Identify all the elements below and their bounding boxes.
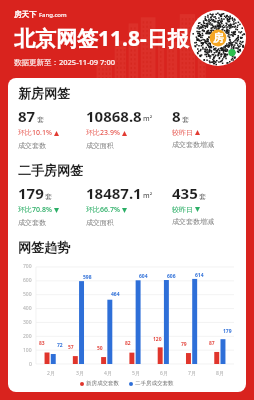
staticText: 房天下: [14, 10, 37, 19]
staticText: 8: [172, 106, 181, 126]
staticText: 606: [167, 273, 176, 280]
staticText: 50: [97, 345, 103, 352]
button[interactable]: 新房成交套数: [80, 380, 119, 387]
button[interactable]: 二手房成交套数: [129, 380, 174, 387]
staticText: 二手房网签: [18, 162, 83, 178]
staticText: 598: [83, 274, 92, 281]
staticText: 179: [223, 328, 232, 335]
staticText: 614: [195, 272, 204, 279]
staticText: 网签趋势: [18, 239, 70, 255]
button[interactable]: 8: [172, 106, 238, 149]
staticText: 新房网签: [18, 85, 70, 101]
staticText: 成交套数增减: [172, 140, 214, 149]
staticText: 二手房成交套数: [135, 380, 174, 387]
staticText: 600: [23, 277, 32, 284]
staticText: 8月: [216, 370, 224, 377]
staticText: 120: [153, 336, 162, 343]
staticText: 套: [45, 192, 52, 201]
staticText: 5月: [132, 370, 140, 377]
staticText: 成交套数: [18, 218, 46, 227]
staticText: 成交面积: [86, 218, 114, 227]
staticText: 300: [23, 319, 32, 326]
staticText: 2月: [47, 370, 55, 377]
staticText: 套: [37, 115, 44, 124]
staticText: 7月: [188, 370, 196, 377]
staticText: 房: [213, 31, 224, 45]
staticText: 179: [18, 183, 44, 203]
staticText: 北京网签11.8-日报: [14, 24, 189, 53]
button[interactable]: 10868.8: [86, 106, 172, 150]
staticText: 87: [209, 340, 215, 347]
staticText: 套: [182, 115, 189, 124]
staticText: 4月: [104, 370, 112, 377]
staticText: 82: [125, 340, 131, 347]
staticText: 环比70.8%: [18, 205, 52, 215]
staticText: 604: [139, 273, 148, 280]
staticText: 200: [23, 333, 32, 340]
staticText: 435: [172, 183, 198, 203]
staticText: 环比23.9%: [86, 128, 120, 138]
staticText: Fang.com: [39, 11, 67, 19]
staticText: 79: [181, 341, 187, 348]
staticText: 464: [111, 291, 120, 298]
button[interactable]: 87: [18, 106, 86, 150]
staticText: 较昨日: [172, 205, 193, 214]
staticText: 100: [23, 347, 32, 354]
button[interactable]: 18487.1: [86, 183, 172, 227]
button[interactable]: 179: [18, 183, 86, 227]
staticText: 环比66.7%: [86, 205, 120, 215]
staticText: 400: [23, 305, 32, 312]
staticText: 6月: [160, 370, 168, 377]
staticText: 10868.8: [86, 106, 142, 126]
staticText: 数据更新至：2025-11-09 7:00: [14, 57, 115, 67]
staticText: 3月: [76, 370, 84, 377]
staticText: 环比10.1%: [18, 128, 52, 138]
staticText: 700: [23, 263, 32, 270]
button[interactable]: 扫码关注二维码: [190, 10, 246, 66]
staticText: 成交套数增减: [172, 217, 214, 226]
staticText: 新房成交套数: [86, 380, 119, 387]
staticText: 500: [23, 291, 32, 298]
staticText: 57: [68, 344, 74, 351]
staticText: m²: [143, 191, 153, 201]
staticText: 较昨日: [172, 128, 193, 137]
staticText: 套: [199, 192, 206, 201]
staticText: m²: [143, 114, 153, 124]
staticText: 成交面积: [86, 141, 114, 150]
staticText: 成交套数: [18, 141, 46, 150]
staticText: 87: [18, 106, 36, 126]
staticText: 18487.1: [86, 183, 142, 203]
button[interactable]: 435: [172, 183, 238, 226]
staticText: 0: [29, 361, 32, 368]
staticText: 72: [57, 342, 63, 349]
staticText: 83: [39, 340, 45, 347]
